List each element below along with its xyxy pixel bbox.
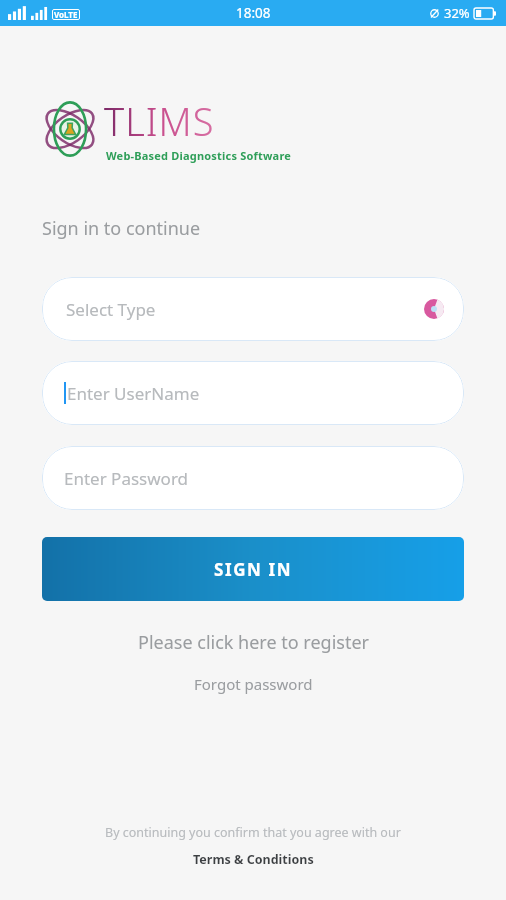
- staticText: Sign in to continue: [42, 216, 201, 241]
- staticText: VoLTE: [54, 9, 78, 20]
- button[interactable]: Select Type: [42, 277, 464, 341]
- button[interactable]: SIGN IN: [42, 537, 464, 601]
- staticText: 18:08: [236, 4, 271, 22]
- staticText: Terms & Conditions: [193, 851, 314, 868]
- staticText: Select Type: [66, 298, 424, 321]
- staticText: Enter Password: [64, 467, 189, 490]
- staticText: TLIMS: [104, 95, 215, 147]
- staticText: Web-Based Diagnostics Software: [106, 148, 292, 163]
- staticText: Forgot password: [194, 674, 313, 694]
- staticText: Please click here to register: [138, 630, 369, 655]
- other: Loading: [424, 299, 444, 319]
- staticText: 32%: [444, 4, 470, 22]
- button[interactable]: Enter UserName: [42, 361, 464, 425]
- button[interactable]: Forgot password: [0, 670, 506, 698]
- staticText: SIGN IN: [214, 558, 293, 581]
- staticText: By continuing you confirm that you agree…: [105, 824, 401, 841]
- button[interactable]: Terms & Conditions: [187, 849, 320, 870]
- staticText: Enter UserName: [67, 382, 200, 405]
- button[interactable]: Enter Password: [42, 446, 464, 510]
- button[interactable]: Please click here to register: [0, 626, 506, 659]
